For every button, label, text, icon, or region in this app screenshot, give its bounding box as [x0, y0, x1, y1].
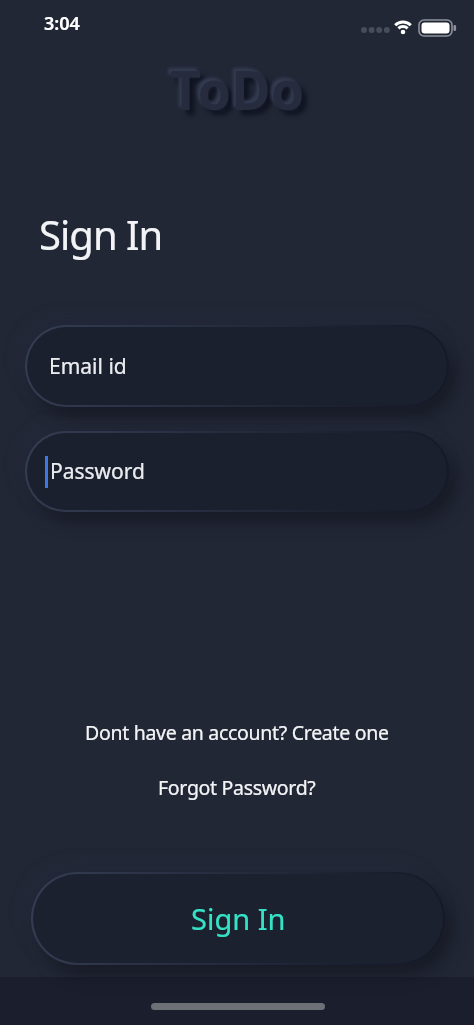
staticText: ToDo [167, 49, 302, 123]
button[interactable]: Password [27, 433, 447, 510]
staticText: Forgot Password? [158, 774, 316, 801]
staticText: ToDo [175, 57, 310, 131]
staticText: ToDo [170, 52, 305, 126]
button[interactable]: Dont have an account? Create one [85, 719, 389, 746]
button[interactable]: Sign In [33, 874, 443, 963]
button[interactable]: Email id [27, 327, 447, 405]
staticText: Sign In [39, 207, 163, 261]
staticText: Password [50, 457, 145, 486]
staticText: Email id [49, 352, 127, 381]
staticText: Sign In [191, 899, 286, 938]
staticText: Dont have an account? Create one [85, 719, 389, 746]
staticText: 3:04 [44, 11, 80, 36]
button[interactable]: Forgot Password? [158, 774, 316, 801]
